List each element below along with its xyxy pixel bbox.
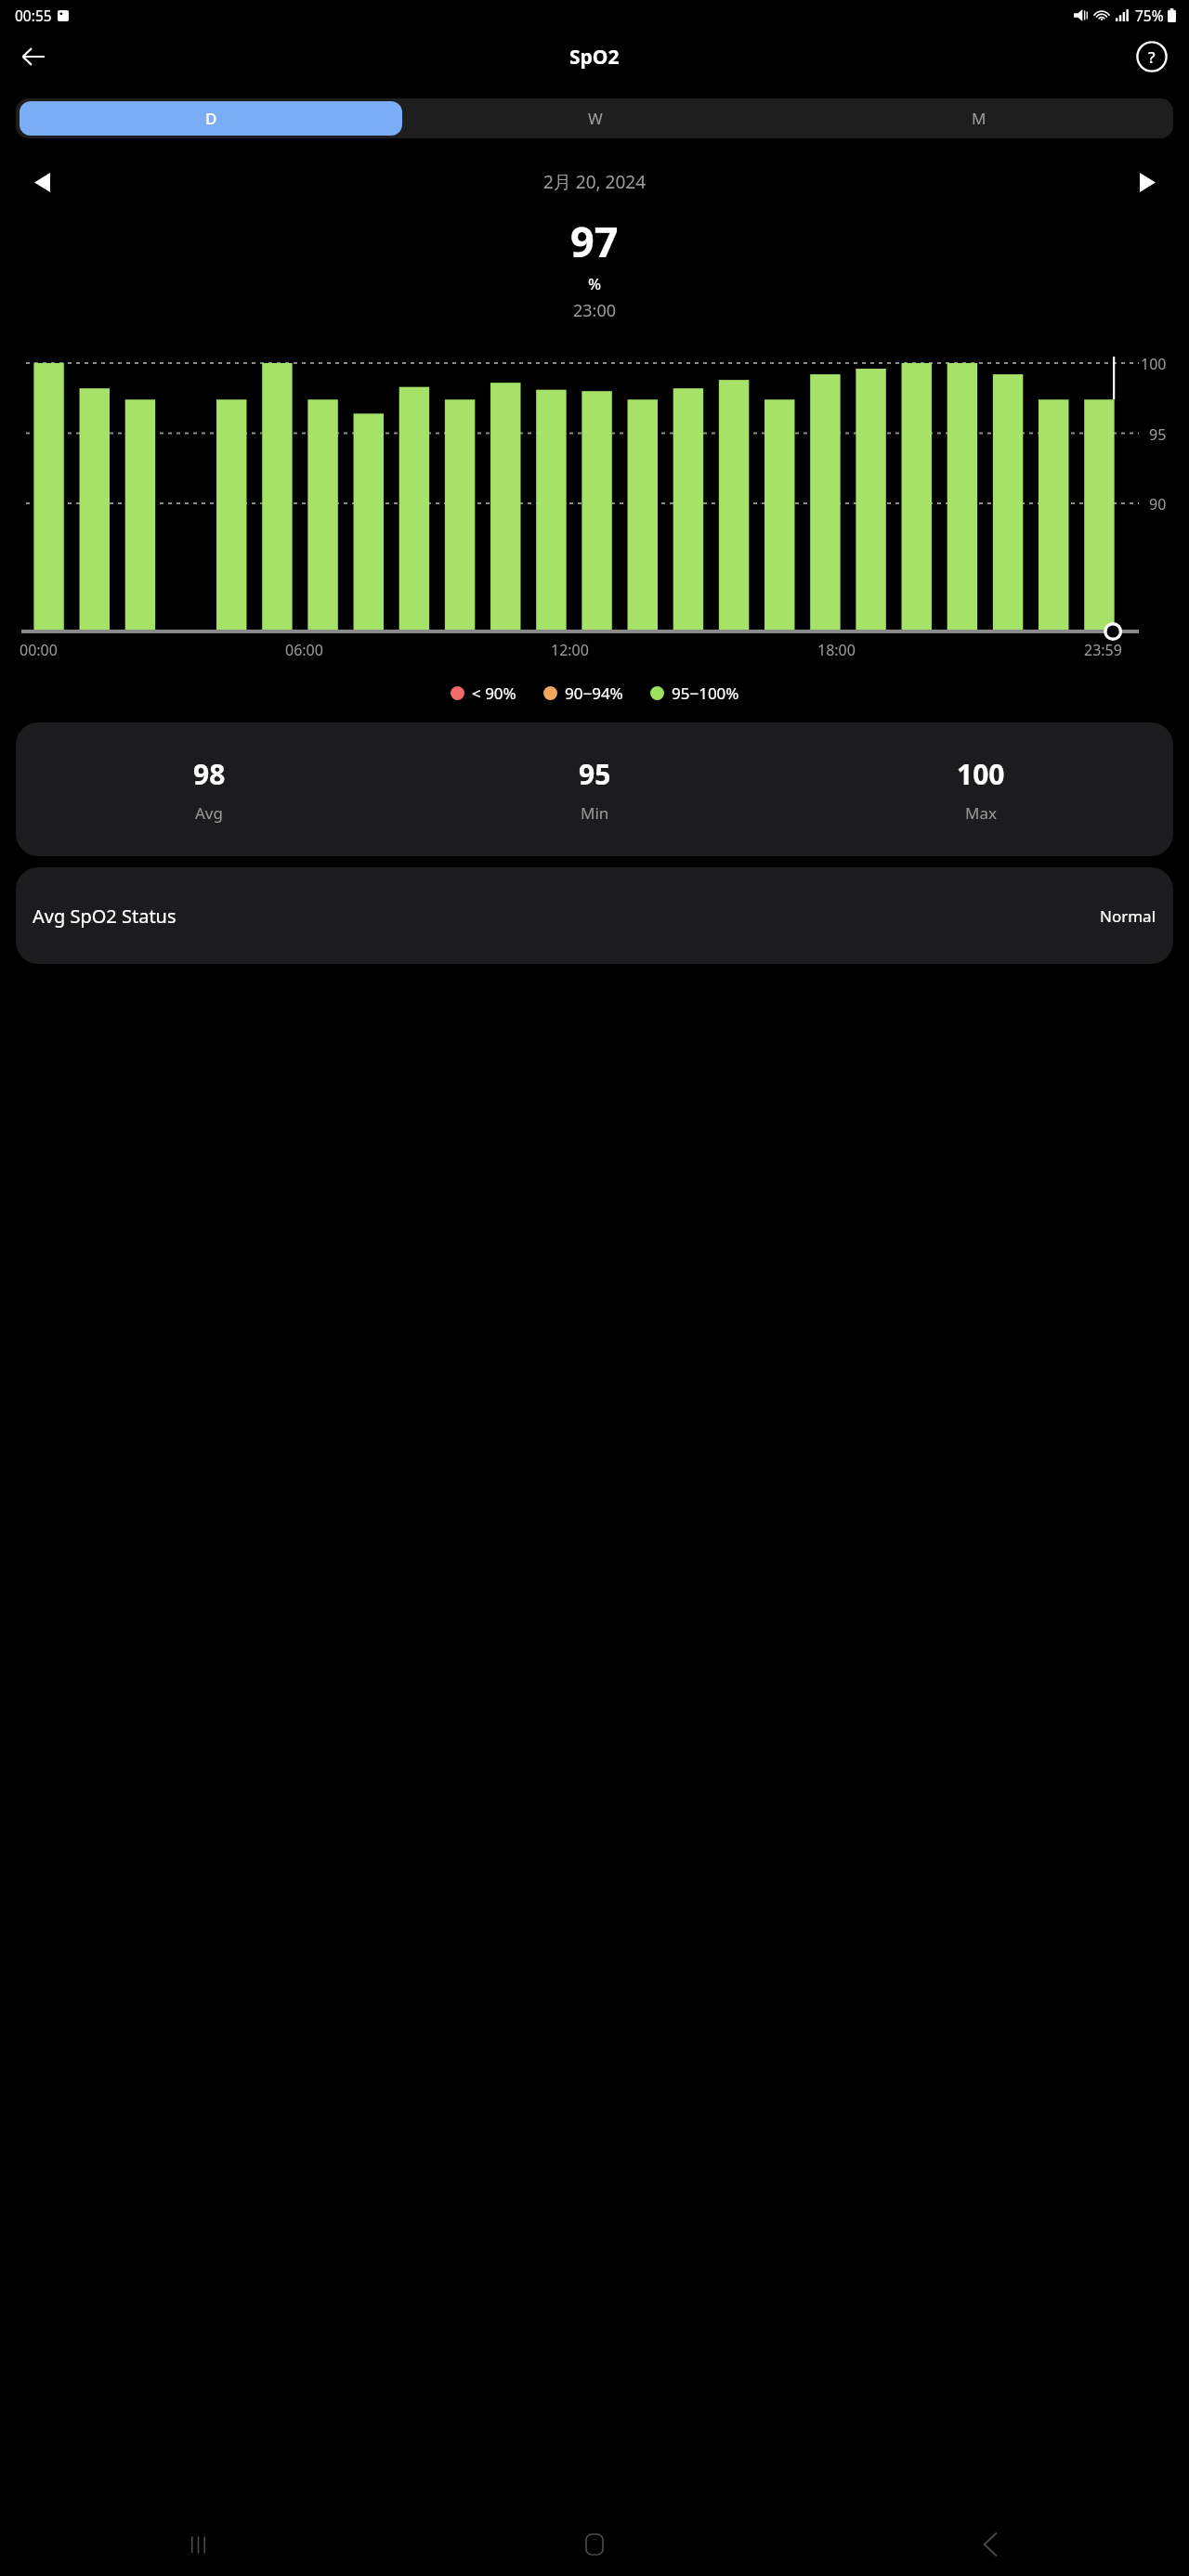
staticText: 00:00 — [20, 640, 58, 660]
staticText: Avg SpO2 Status — [33, 904, 176, 929]
staticText: 100 — [1141, 354, 1167, 374]
staticText: < 90% — [472, 683, 516, 704]
staticText: 23:59 — [1084, 640, 1122, 660]
staticText: 06:00 — [285, 640, 323, 660]
staticText: 12:00 — [551, 640, 589, 660]
staticText: 95−100% — [672, 683, 739, 704]
staticText: 00:55 — [15, 6, 52, 25]
button[interactable]: Home — [396, 2513, 792, 2576]
button[interactable]: Help — [1128, 33, 1176, 81]
staticText: Min — [581, 802, 609, 824]
staticText: 98 — [193, 755, 226, 793]
button[interactable]: Back — [792, 2513, 1189, 2576]
staticText: 95 — [579, 755, 611, 793]
staticText: 90 — [1149, 494, 1167, 514]
staticText: % — [588, 273, 602, 294]
button[interactable]: Back — [9, 33, 58, 81]
staticText: 95 — [1149, 424, 1167, 445]
staticText: 18:00 — [817, 640, 856, 660]
button[interactable]: Recents — [0, 2513, 396, 2576]
staticText: 2月 20, 2024 — [61, 170, 1128, 194]
staticText: D — [205, 108, 217, 129]
button[interactable]: W — [404, 101, 786, 136]
button[interactable]: D — [20, 101, 402, 136]
button[interactable]: Avg SpO2 Status — [16, 867, 1173, 964]
staticText: SpO2 — [569, 44, 620, 71]
button[interactable]: Previous day — [22, 163, 61, 202]
button[interactable]: Next day — [1128, 163, 1167, 202]
staticText: 97 — [570, 213, 619, 269]
staticText: Avg — [195, 802, 223, 824]
button[interactable]: 98 — [16, 722, 1173, 856]
staticText: 90−94% — [565, 683, 623, 704]
staticText: Normal — [1100, 905, 1156, 927]
staticText: Max — [965, 802, 997, 824]
staticText: W — [588, 108, 603, 129]
staticText: 100 — [957, 755, 1005, 793]
button[interactable]: M — [788, 101, 1169, 136]
staticText: 75% — [1135, 6, 1164, 25]
staticText: M — [972, 108, 986, 129]
staticText: ? — [1148, 46, 1156, 68]
staticText: 23:00 — [573, 299, 617, 322]
